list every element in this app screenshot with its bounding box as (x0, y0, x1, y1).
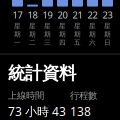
staticText: 22 (87, 9, 97, 21)
staticText: 星期六 (89, 22, 96, 47)
staticText: 138 (70, 103, 91, 119)
staticText: 星期一 (14, 22, 21, 47)
staticText: 星期日 (104, 22, 111, 47)
staticText: 23 (102, 9, 112, 21)
staticText: 星期二 (29, 22, 36, 47)
staticText: 20 (57, 9, 67, 21)
staticText: 星期五 (74, 22, 81, 47)
staticText: 21 (72, 9, 82, 21)
staticText: 18 (27, 9, 37, 21)
staticText: 19 (42, 9, 52, 21)
staticText: 星期三 (44, 22, 51, 47)
staticText: 統計資料 (8, 62, 76, 84)
staticText: 17 (12, 9, 22, 21)
staticText: 上線時間 (8, 90, 44, 101)
staticText: 73 小時 43 分鐘 (8, 103, 66, 120)
staticText: 星期四 (59, 22, 66, 47)
staticText: 行程數 (70, 90, 97, 101)
